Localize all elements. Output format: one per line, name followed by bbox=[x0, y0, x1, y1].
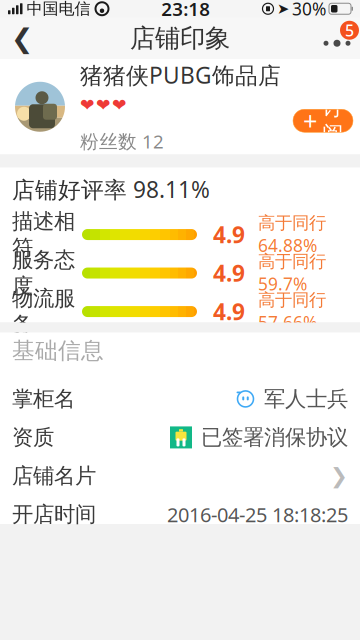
staticText: + bbox=[303, 104, 317, 137]
staticText: ❤ bbox=[96, 95, 111, 115]
staticText: 中国电信 bbox=[26, 0, 90, 19]
button[interactable]: 店铺名片 bbox=[0, 457, 360, 495]
staticText: 描述相符 bbox=[12, 208, 75, 261]
staticText: 4.9 bbox=[213, 296, 245, 327]
button[interactable]: Back bbox=[0, 18, 44, 59]
staticText: 开店时间 bbox=[12, 501, 96, 527]
staticText: 2016-04-25 18:18:25 bbox=[167, 501, 348, 528]
staticText: 4.9 bbox=[213, 258, 245, 288]
staticText: ➤ bbox=[277, 0, 289, 17]
staticText: 高于同行64.88% bbox=[258, 212, 326, 257]
button[interactable]: More options bbox=[314, 18, 360, 59]
staticText: 高于同行57.66% bbox=[258, 289, 326, 334]
staticText: 基础信息 bbox=[12, 337, 104, 365]
staticText: ❤ bbox=[80, 95, 95, 115]
staticText: 高于同行59.7% bbox=[258, 251, 326, 295]
staticText: 店铺名片 bbox=[12, 463, 96, 489]
staticText: 物流服务 bbox=[12, 285, 75, 338]
staticText: 粉丝数 12 bbox=[80, 129, 164, 153]
staticText: 4.9 bbox=[213, 219, 245, 250]
staticText: 军人士兵 bbox=[264, 386, 348, 412]
button[interactable]: + bbox=[293, 109, 353, 132]
staticText: 掌柜名 bbox=[12, 386, 75, 412]
staticText: 猪猪侠PUBG饰品店 bbox=[80, 60, 281, 90]
staticText: 已签署消保协议 bbox=[201, 424, 348, 450]
staticText: 5 bbox=[345, 20, 354, 41]
staticText: 服务态度 bbox=[12, 247, 75, 299]
staticText: ❤ bbox=[112, 95, 127, 115]
staticText: 订阅 bbox=[322, 94, 343, 147]
staticText: 30% bbox=[292, 0, 326, 20]
staticText: 资质 bbox=[12, 424, 54, 450]
staticText: 23:18 bbox=[161, 0, 210, 21]
staticText: 店铺好评率 98.11% bbox=[12, 174, 210, 204]
staticText: ❮ bbox=[11, 23, 33, 53]
staticText: ❯ bbox=[330, 464, 348, 488]
staticText: 店铺印象 bbox=[130, 23, 230, 54]
